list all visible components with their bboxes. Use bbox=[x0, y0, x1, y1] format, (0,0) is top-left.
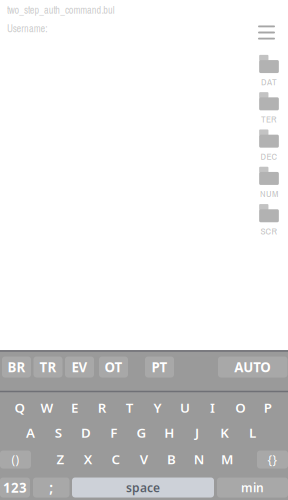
button[interactable]: Q bbox=[5, 394, 33, 421]
staticText: X bbox=[84, 450, 93, 468]
button[interactable]: A bbox=[17, 419, 44, 446]
staticText: PT bbox=[151, 358, 167, 376]
staticText: space bbox=[126, 479, 160, 495]
button[interactable]: {} bbox=[257, 450, 288, 468]
button[interactable]: Z bbox=[47, 445, 74, 472]
staticText: D bbox=[81, 424, 91, 441]
button[interactable]: BR bbox=[2, 356, 31, 377]
staticText: V bbox=[140, 450, 148, 468]
staticText: K bbox=[220, 424, 229, 441]
staticText: two_step_auth_command.bul bbox=[7, 3, 115, 17]
staticText: Username: bbox=[7, 22, 47, 35]
button[interactable]: () bbox=[0, 450, 31, 468]
staticText: C bbox=[112, 450, 121, 468]
staticText: R bbox=[98, 399, 107, 416]
staticText: OT bbox=[104, 358, 122, 376]
button[interactable]: E bbox=[61, 394, 88, 421]
staticText: min bbox=[241, 479, 264, 495]
button[interactable]: EV bbox=[65, 356, 94, 377]
button[interactable]: T bbox=[116, 394, 144, 421]
staticText: T bbox=[126, 399, 134, 416]
staticText: DEC bbox=[260, 150, 277, 163]
staticText: A bbox=[26, 424, 35, 441]
button[interactable]: H bbox=[155, 419, 183, 446]
button[interactable]: C bbox=[102, 445, 130, 472]
button[interactable]: R bbox=[88, 394, 116, 421]
button[interactable]: OT bbox=[99, 356, 128, 377]
staticText: W bbox=[40, 399, 53, 416]
staticText: F bbox=[110, 424, 117, 441]
staticText: J bbox=[195, 424, 199, 441]
button[interactable]: B bbox=[158, 445, 185, 472]
staticText: P bbox=[264, 399, 272, 416]
staticText: N bbox=[194, 450, 205, 468]
button[interactable]: TR bbox=[33, 356, 62, 377]
button[interactable]: SCR bbox=[251, 206, 287, 236]
staticText: S bbox=[55, 424, 62, 441]
button[interactable]: min bbox=[217, 477, 288, 497]
button[interactable]: DEC bbox=[251, 131, 287, 161]
button[interactable]: Menu bbox=[254, 20, 278, 44]
staticText: TR bbox=[39, 358, 56, 376]
staticText: M bbox=[221, 450, 233, 468]
staticText: Z bbox=[57, 450, 65, 468]
staticText: I bbox=[210, 399, 215, 416]
staticText: BR bbox=[7, 358, 25, 376]
button[interactable]: I bbox=[199, 394, 226, 421]
button[interactable]: U bbox=[171, 394, 199, 421]
button[interactable]: J bbox=[183, 419, 211, 446]
button[interactable]: NUM bbox=[251, 168, 287, 198]
button[interactable]: AUTO bbox=[218, 356, 287, 377]
staticText: () bbox=[11, 451, 19, 467]
button[interactable]: DAT bbox=[251, 56, 287, 86]
staticText: {} bbox=[267, 451, 277, 467]
staticText: Y bbox=[153, 399, 161, 416]
button[interactable]: TER bbox=[251, 94, 287, 124]
button[interactable]: G bbox=[128, 419, 155, 446]
staticText: NUM bbox=[260, 187, 278, 200]
button[interactable]: K bbox=[211, 419, 239, 446]
staticText: G bbox=[136, 424, 146, 441]
staticText: DAT bbox=[261, 76, 277, 88]
button[interactable]: ; bbox=[33, 477, 69, 497]
button[interactable]: V bbox=[130, 445, 158, 472]
button[interactable]: O bbox=[226, 394, 254, 421]
button[interactable]: L bbox=[239, 419, 266, 446]
button[interactable]: PT bbox=[145, 356, 174, 377]
staticText: SCR bbox=[260, 225, 277, 237]
button[interactable]: M bbox=[213, 445, 241, 472]
staticText: TER bbox=[261, 113, 277, 125]
button[interactable]: X bbox=[74, 445, 102, 472]
staticText: L bbox=[249, 424, 256, 441]
staticText: AUTO bbox=[234, 358, 271, 376]
staticText: 123 bbox=[3, 479, 27, 496]
button[interactable]: W bbox=[33, 394, 61, 421]
button[interactable]: Y bbox=[144, 394, 171, 421]
staticText: O bbox=[235, 399, 245, 416]
button[interactable]: P bbox=[254, 394, 282, 421]
button[interactable]: 123 bbox=[0, 477, 30, 497]
button[interactable]: space bbox=[72, 477, 214, 497]
staticText: Q bbox=[14, 399, 24, 416]
staticText: U bbox=[180, 399, 190, 416]
staticText: B bbox=[167, 450, 176, 468]
button[interactable]: F bbox=[100, 419, 128, 446]
button[interactable]: S bbox=[44, 419, 72, 446]
staticText: EV bbox=[71, 358, 87, 376]
button[interactable]: N bbox=[185, 445, 213, 472]
staticText: H bbox=[164, 424, 174, 441]
staticText: E bbox=[71, 399, 78, 416]
button[interactable]: D bbox=[72, 419, 100, 446]
staticText: ; bbox=[49, 479, 53, 496]
